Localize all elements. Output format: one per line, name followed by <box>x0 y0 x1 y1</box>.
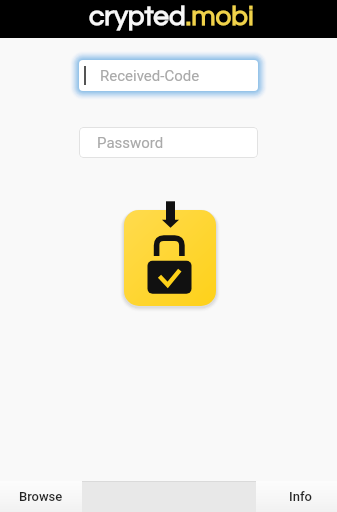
staticText: Received-Code <box>100 67 200 85</box>
button[interactable]: Info <box>256 481 337 512</box>
staticText: Info <box>289 489 312 504</box>
button[interactable]: Browse <box>0 481 82 512</box>
staticText: Browse <box>19 489 63 504</box>
staticText: crypted.mobi <box>89 2 254 31</box>
button[interactable]: Decrypt file <box>122 199 218 308</box>
button[interactable]: Password <box>79 127 258 158</box>
button[interactable]: Received-Code <box>69 50 268 101</box>
staticText: Password <box>97 134 164 152</box>
